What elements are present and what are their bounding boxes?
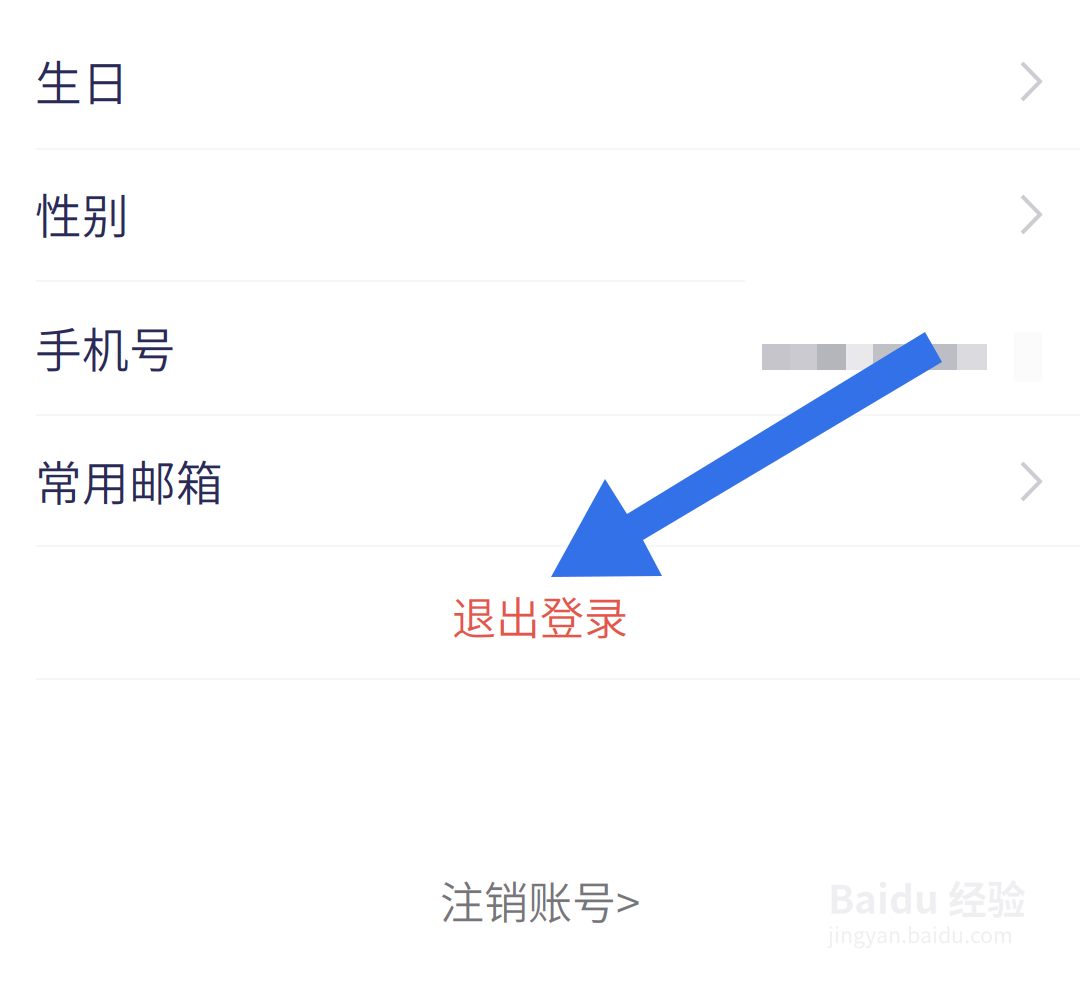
button[interactable]: 性别 [0, 150, 1080, 280]
button[interactable]: 退出登录 [0, 550, 1080, 681]
staticText: Baidu 经验 [828, 869, 1026, 925]
button[interactable]: 常用邮箱 [0, 416, 1080, 545]
button[interactable]: 生日 [0, 0, 1080, 148]
staticText: 退出登录 [452, 584, 628, 647]
staticText: 手机号 [35, 313, 176, 381]
staticText: jingyan.baidu.com [828, 919, 1013, 949]
staticText: 常用邮箱 [35, 446, 223, 514]
staticText: 性别 [35, 179, 129, 247]
button[interactable]: 手机号 [0, 282, 1080, 414]
staticText: 生日 [35, 46, 129, 114]
staticText: 注销账号> [440, 868, 640, 932]
button[interactable]: 注销账号> [0, 852, 1080, 948]
